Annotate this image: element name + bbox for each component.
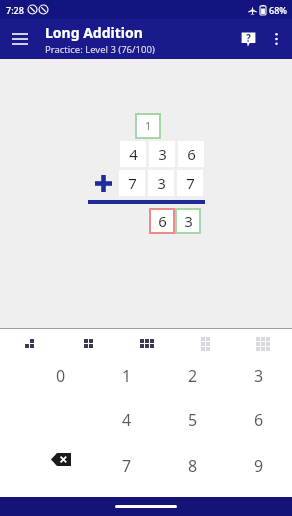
button[interactable]: 6: [149, 208, 175, 234]
staticText: 6: [187, 144, 196, 164]
button[interactable]: Backspace: [41, 442, 81, 476]
staticText: 5: [188, 409, 198, 431]
staticText: 8: [188, 455, 198, 477]
button[interactable]: 4: [120, 141, 146, 167]
staticText: 4: [129, 144, 138, 164]
staticText: 68%: [269, 4, 287, 16]
button[interactable]: 2 digit difficulty: [0, 329, 59, 358]
staticText: 0: [56, 365, 66, 387]
staticText: Long Addition: [45, 23, 143, 42]
staticText: ?: [246, 31, 251, 45]
button[interactable]: 6 digit difficulty: [234, 329, 292, 358]
button[interactable]: 3 digit difficulty: [59, 329, 118, 358]
staticText: 3: [254, 365, 264, 387]
staticText: Practice: Level 3 (76/100): [45, 43, 155, 56]
staticText: 6: [158, 211, 167, 231]
staticText: 7: [186, 173, 195, 193]
staticText: 1: [145, 119, 151, 133]
button[interactable]: 9: [226, 451, 292, 497]
staticText: 6: [254, 409, 264, 431]
staticText: 2: [188, 365, 198, 387]
button[interactable]: 8: [160, 451, 226, 497]
staticText: 3: [158, 144, 167, 164]
staticText: 7:28: [6, 4, 24, 16]
button[interactable]: 1: [94, 358, 160, 405]
button[interactable]: 3: [226, 358, 292, 405]
staticText: 9: [254, 455, 264, 477]
staticText: 1: [122, 365, 132, 387]
button[interactable]: 4 digit difficulty: [118, 329, 176, 358]
button[interactable]: 7: [94, 451, 160, 497]
button[interactable]: 7: [119, 170, 145, 196]
button[interactable]: Open navigation menu: [6, 25, 34, 53]
staticText: 4: [122, 409, 132, 431]
button[interactable]: 6: [178, 141, 204, 167]
button[interactable]: 6: [226, 405, 292, 451]
button[interactable]: 1: [135, 113, 161, 139]
button[interactable]: Help: [233, 24, 263, 54]
button[interactable]: 3: [149, 141, 175, 167]
button[interactable]: 4: [94, 405, 160, 451]
button[interactable]: More options: [263, 26, 289, 52]
staticText: 3: [157, 173, 166, 193]
button[interactable]: 5: [160, 405, 226, 451]
button[interactable]: 3: [148, 170, 174, 196]
staticText: 7: [122, 455, 132, 477]
staticText: 7: [128, 173, 137, 193]
staticText: 3: [184, 211, 193, 231]
button[interactable]: 2: [160, 358, 226, 405]
button[interactable]: 7: [177, 170, 203, 196]
button[interactable]: 3: [175, 208, 201, 234]
button[interactable]: 0: [28, 358, 94, 405]
button[interactable]: 5 digit difficulty: [176, 329, 234, 358]
